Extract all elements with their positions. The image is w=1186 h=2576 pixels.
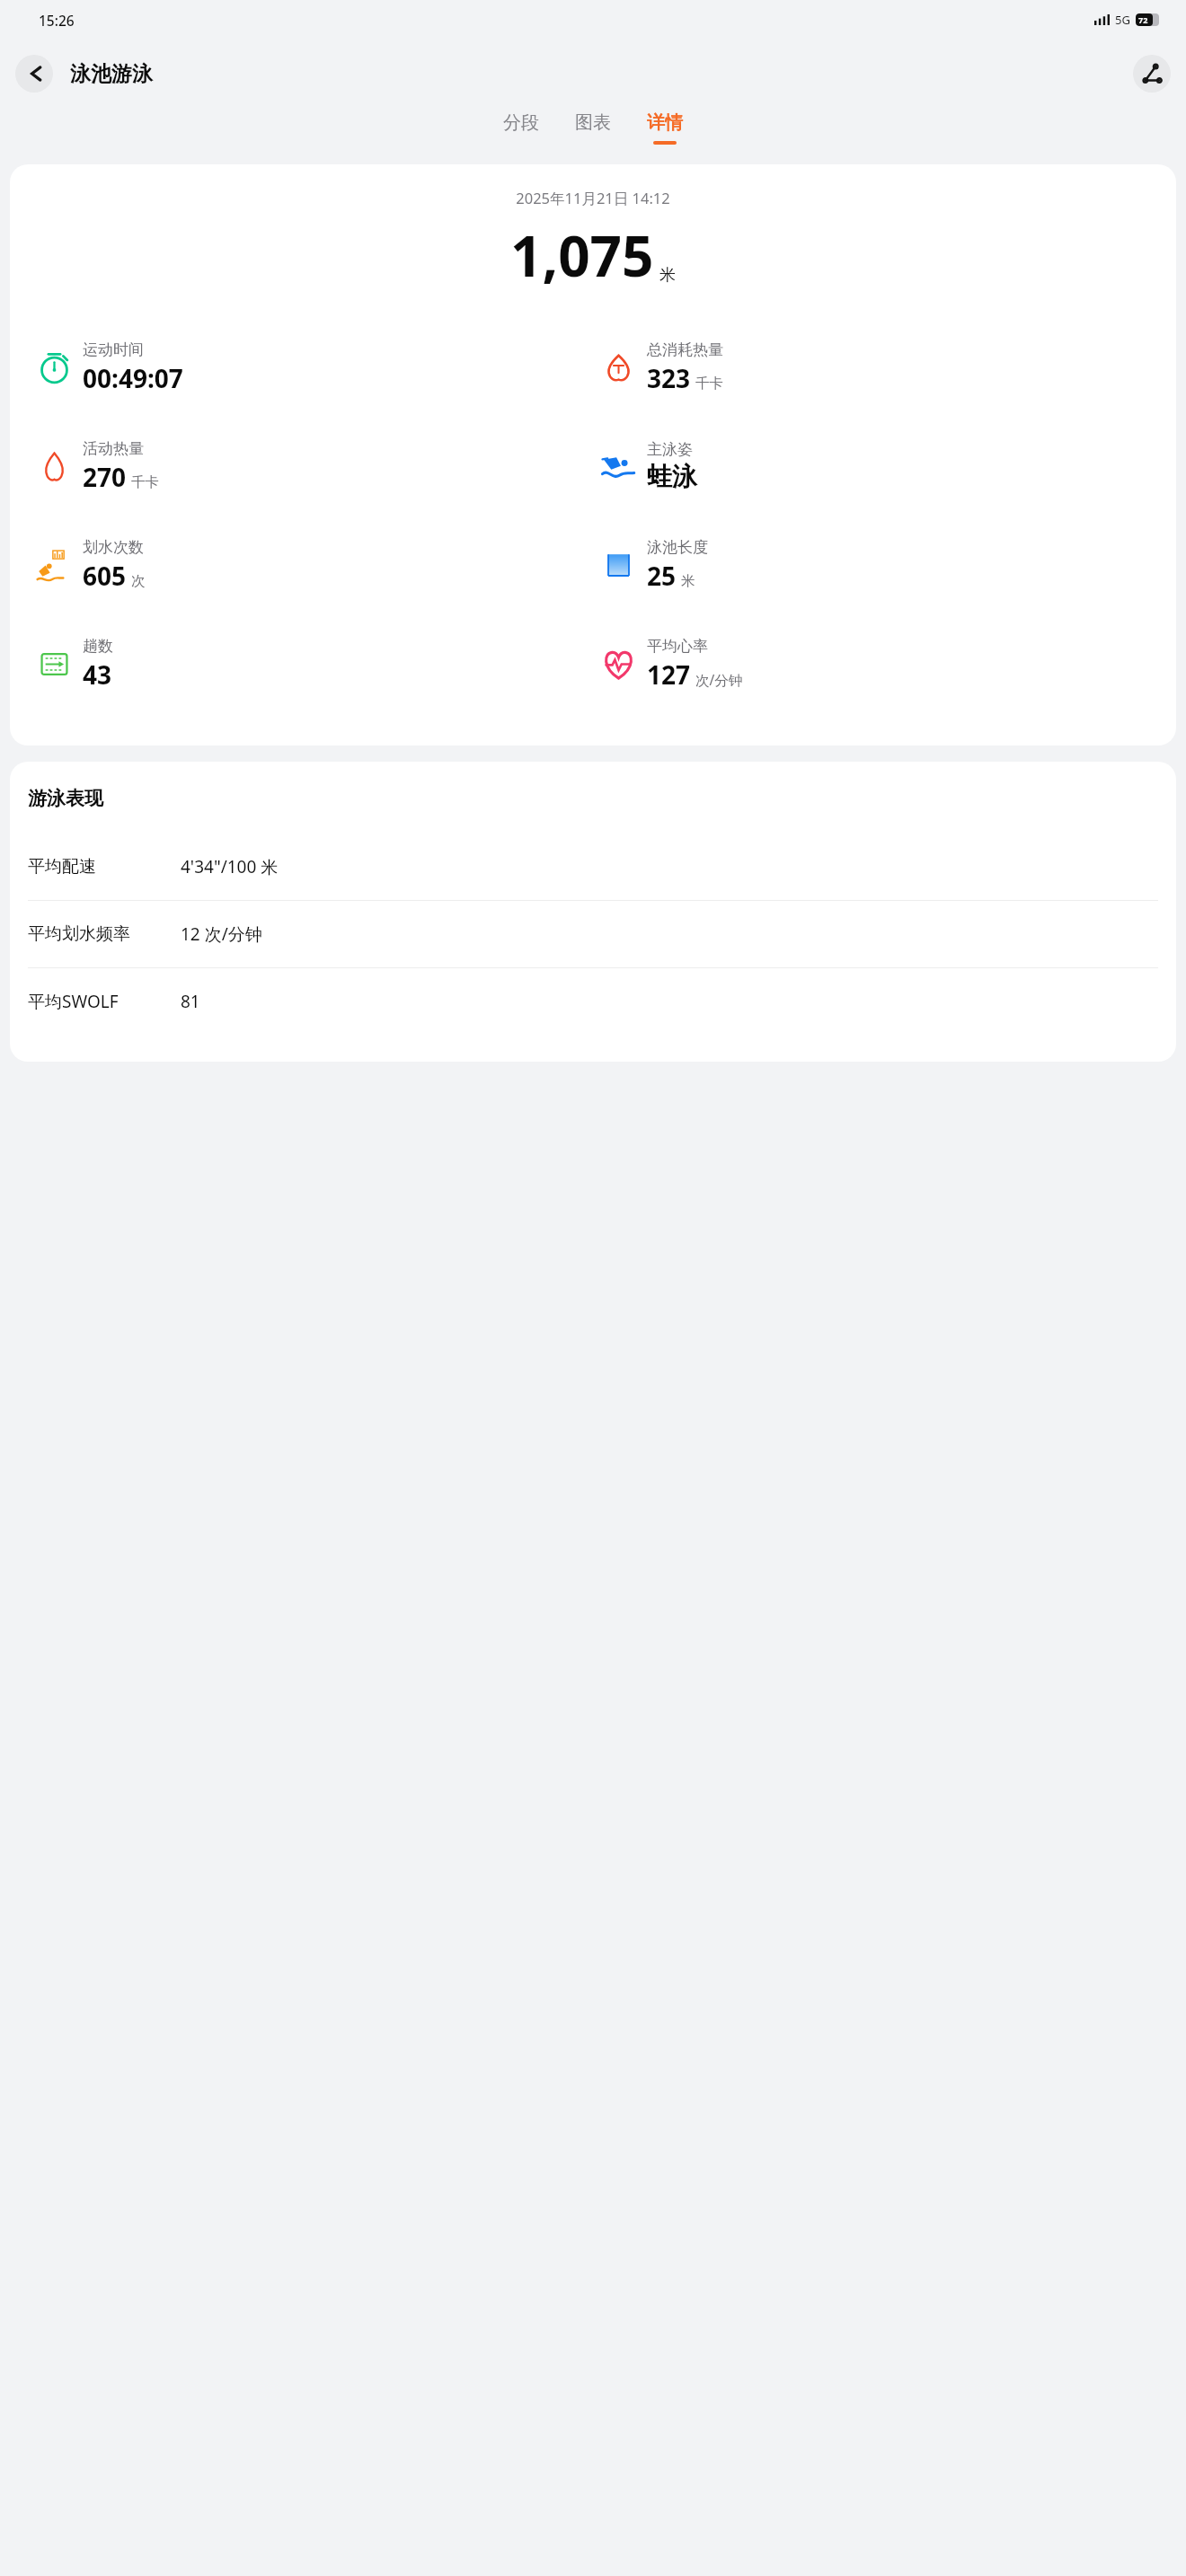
staticText: 72 [1138, 14, 1148, 25]
staticText: 15:26 [39, 11, 75, 30]
button[interactable]: 运动时间 [36, 318, 183, 417]
staticText: 米 [659, 265, 676, 286]
staticText: 12 次/分钟 [181, 922, 262, 946]
staticText: 分段 [503, 111, 539, 134]
staticText: 平均划水频率 [28, 923, 158, 945]
button[interactable]: 详情 [642, 108, 688, 148]
button[interactable]: 平均划水频率 [28, 901, 1158, 967]
button[interactable]: 总消耗热量 [600, 318, 723, 417]
staticText: 平均心率 [647, 637, 708, 656]
staticText: 总消耗热量 [647, 340, 723, 359]
button[interactable]: 趟数 [36, 614, 113, 713]
staticText: 运动时间 [83, 340, 144, 359]
staticText: 活动热量 [83, 439, 144, 458]
staticText: 泳池游泳 [70, 61, 153, 87]
staticText: 平均配速 [28, 856, 158, 878]
staticText: 游泳表现 [28, 787, 103, 810]
staticText: 图表 [575, 111, 611, 134]
staticText: 323 [647, 361, 691, 395]
staticText: 5G [1115, 12, 1130, 28]
staticText: 270 [83, 460, 127, 494]
button[interactable]: 图表 [570, 108, 616, 148]
button[interactable]: 平均SWOLF [28, 968, 1158, 1035]
staticText: 米 [681, 572, 695, 590]
button[interactable]: Share [1133, 55, 1171, 93]
staticText: 趟数 [83, 637, 113, 656]
staticText: 2025年11月21日 14:12 [10, 188, 1176, 208]
staticText: 605 [83, 559, 127, 593]
staticText: 次/分钟 [695, 670, 743, 689]
staticText: 1,075 [510, 217, 654, 293]
staticText: 划水次数 [83, 538, 144, 557]
staticText: 4'34"/100 米 [181, 855, 279, 878]
staticText: 蛙泳 [647, 461, 697, 492]
button[interactable]: 划水次数 [36, 516, 146, 614]
staticText: 127 [647, 657, 691, 692]
staticText: 00:49:07 [83, 361, 183, 395]
staticText: 主泳姿 [647, 440, 693, 459]
staticText: 次 [131, 572, 146, 590]
staticText: 81 [181, 990, 200, 1013]
button[interactable]: 主泳姿 [600, 417, 697, 516]
button[interactable]: 泳池长度 [600, 516, 708, 614]
button[interactable]: 平均配速 [28, 834, 1158, 900]
staticText: 平均SWOLF [28, 990, 158, 1013]
staticText: 千卡 [695, 375, 723, 393]
staticText: 详情 [647, 111, 683, 134]
button[interactable]: 分段 [498, 108, 544, 148]
button[interactable]: 活动热量 [36, 417, 159, 516]
staticText: 43 [83, 657, 112, 692]
staticText: 千卡 [131, 473, 159, 491]
staticText: 泳池长度 [647, 538, 708, 557]
staticText: 25 [647, 559, 677, 593]
button[interactable]: Back [15, 55, 53, 93]
button[interactable]: 平均心率 [600, 614, 743, 713]
